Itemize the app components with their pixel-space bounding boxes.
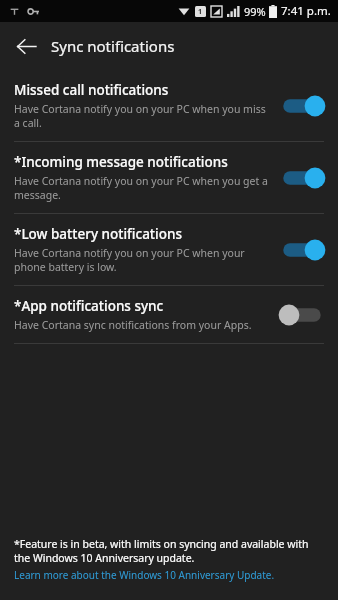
staticText: *App notifications sync — [14, 297, 164, 315]
button[interactable]: *Low battery notifications — [0, 214, 338, 285]
staticText: Have Cortana sync notifications from you… — [14, 318, 252, 332]
button[interactable]: Toggle on — [278, 165, 326, 191]
staticText: *Low battery notifications — [14, 225, 182, 243]
staticText: 99% — [244, 4, 266, 19]
staticText: Have Cortana notify you on your PC when … — [14, 174, 268, 202]
staticText: Missed call notifications — [14, 81, 169, 99]
button[interactable]: *Incoming message notifications — [0, 142, 338, 213]
button[interactable]: Toggle on — [278, 93, 326, 119]
staticText: *Feature is in beta, with limits on sync… — [14, 537, 324, 565]
button[interactable]: Back — [8, 28, 44, 64]
staticText: Learn more about the Windows 10 Annivers… — [14, 568, 275, 582]
staticText: *Incoming message notifications — [14, 153, 228, 171]
staticText: Sync notifications — [51, 36, 175, 56]
button[interactable]: Missed call notifications — [0, 70, 338, 141]
button[interactable]: Toggle on — [278, 237, 326, 263]
staticText: 1 — [198, 7, 203, 17]
button[interactable]: Toggle off — [278, 302, 326, 328]
button[interactable]: Learn more about the Windows 10 Annivers… — [14, 568, 275, 582]
staticText: 7:41 p.m. — [281, 3, 331, 19]
staticText: Have Cortana notify you on your PC when … — [14, 246, 268, 274]
staticText: Have Cortana notify you on your PC when … — [14, 102, 268, 130]
button[interactable]: *App notifications sync — [0, 286, 338, 343]
